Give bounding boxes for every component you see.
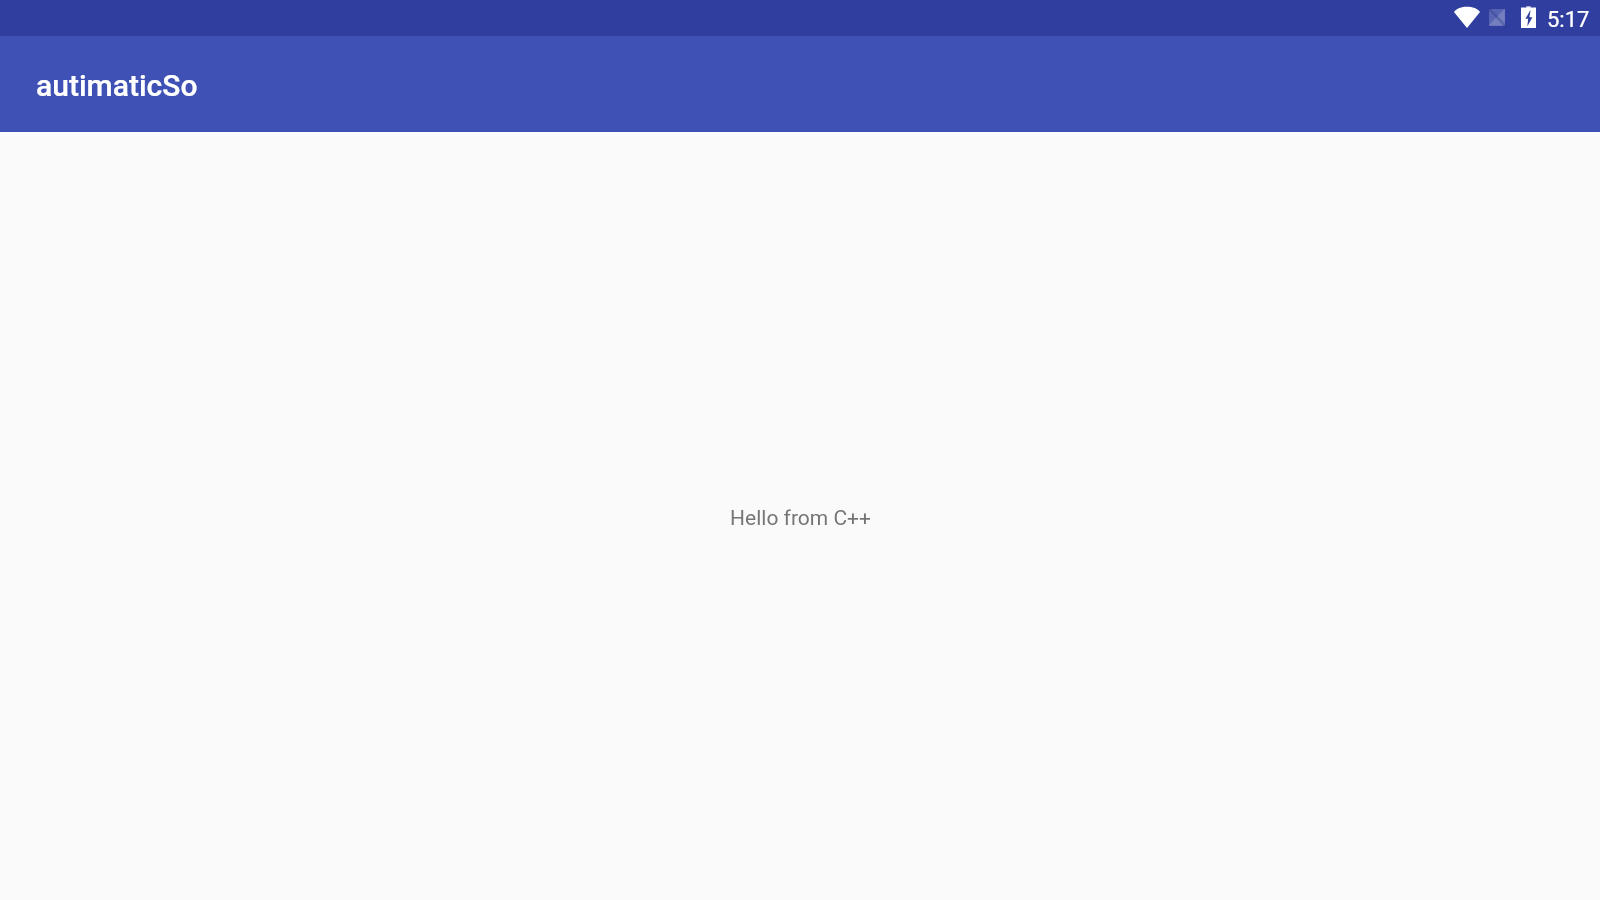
staticText: autimaticSo bbox=[36, 68, 198, 103]
staticText: Hello from C++ bbox=[730, 506, 871, 531]
other: Wi-Fi signal bbox=[1454, 6, 1480, 28]
staticText: 5:17 bbox=[1547, 7, 1590, 33]
other: No mobile signal bbox=[1488, 8, 1506, 27]
other: Battery charging bbox=[1521, 5, 1536, 28]
